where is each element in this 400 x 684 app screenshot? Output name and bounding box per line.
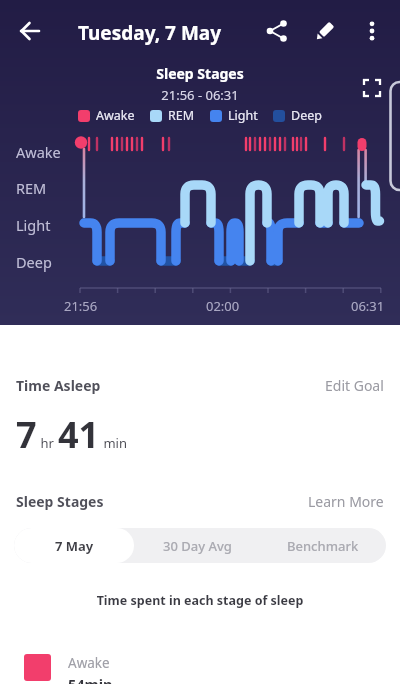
button[interactable] [358, 17, 386, 45]
staticText: Light [16, 215, 51, 235]
staticText: 21:56 - 06:31 [0, 86, 400, 104]
staticText: hr [37, 434, 58, 452]
staticText: Learn More [308, 492, 384, 511]
staticText: Awake [96, 107, 135, 124]
staticText: 30 Day Avg [163, 537, 232, 555]
staticText: Time Asleep [16, 376, 101, 395]
staticText: Deep [291, 107, 322, 124]
staticText: Benchmark [287, 537, 359, 555]
button[interactable]: Benchmark [260, 528, 386, 563]
staticText: 7 May [55, 537, 94, 555]
staticText: 02:00 [206, 297, 240, 315]
staticText: 21:56 [64, 297, 98, 315]
staticText: 7 [16, 410, 37, 459]
staticText: Awake [68, 654, 110, 672]
button[interactable]: Sleep Stages [16, 492, 384, 511]
button[interactable]: 30 Day Avg [134, 528, 260, 563]
staticText: REM [16, 178, 47, 198]
staticText: Awake [16, 142, 61, 162]
button[interactable] [360, 76, 384, 100]
staticText: Edit Goal [325, 376, 384, 395]
staticText: Sleep Stages [0, 64, 400, 83]
staticText: Time spent in each stage of sleep [0, 592, 400, 609]
button[interactable] [311, 17, 339, 45]
button[interactable]: 7 May [14, 528, 134, 563]
staticText: Deep [16, 252, 52, 272]
button[interactable]: Awake [24, 654, 113, 684]
staticText: Sleep Stages [16, 492, 104, 511]
staticText: Light [228, 107, 258, 124]
button[interactable] [16, 17, 44, 45]
staticText: REM [168, 107, 195, 124]
button[interactable]: Time Asleep [16, 376, 384, 395]
staticText: min [100, 434, 127, 452]
button[interactable] [263, 17, 291, 45]
staticText: 41 [58, 410, 100, 459]
staticText: 54min [68, 674, 113, 684]
staticText: Tuesday, 7 May [78, 20, 222, 46]
staticText: 06:31 [351, 297, 385, 315]
